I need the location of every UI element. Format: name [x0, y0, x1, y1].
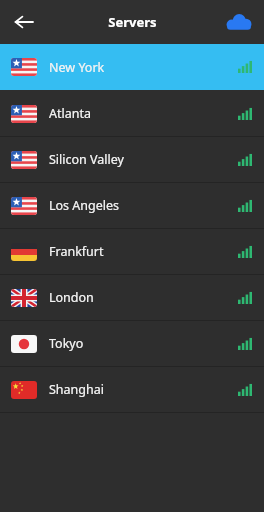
staticText: Frankfurt	[49, 243, 104, 260]
staticText: Servers	[108, 13, 157, 31]
staticText: London	[49, 289, 94, 306]
button[interactable]: Shanghai	[0, 367, 264, 412]
button[interactable]: Cloud	[222, 5, 256, 39]
button[interactable]: Los Angeles	[0, 183, 264, 228]
button[interactable]: Frankfurt	[0, 229, 264, 274]
button[interactable]: Atlanta	[0, 91, 264, 136]
button[interactable]: London	[0, 275, 264, 320]
staticText: Silicon Valley	[49, 151, 124, 168]
staticText: Atlanta	[49, 105, 91, 122]
staticText: Shanghai	[49, 381, 104, 398]
staticText: Los Angeles	[49, 197, 120, 214]
button[interactable]: Silicon Valley	[0, 137, 264, 182]
button[interactable]: Back	[6, 4, 42, 40]
button[interactable]: New York	[0, 44, 264, 90]
staticText: New York	[49, 59, 105, 76]
button[interactable]: Tokyo	[0, 321, 264, 366]
staticText: Tokyo	[49, 335, 84, 352]
